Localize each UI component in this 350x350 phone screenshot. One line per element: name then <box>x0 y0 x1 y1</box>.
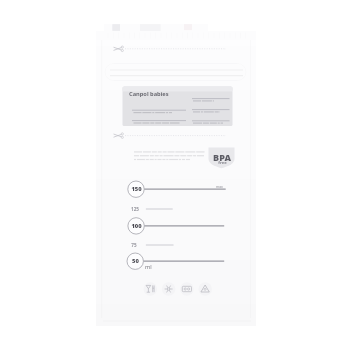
staticText: 75 <box>131 242 137 248</box>
staticText: 100 <box>131 222 142 230</box>
staticText: 150 <box>131 185 142 193</box>
staticText: Canpol babies <box>129 90 169 98</box>
button[interactable]: Canpol babies <box>129 90 169 98</box>
staticText: ml <box>145 263 152 271</box>
staticText: BPA <box>213 151 231 163</box>
staticText: free <box>218 160 227 166</box>
staticText: 50 <box>132 257 139 265</box>
staticText: 125 <box>131 206 139 212</box>
staticText: max <box>216 184 223 189</box>
